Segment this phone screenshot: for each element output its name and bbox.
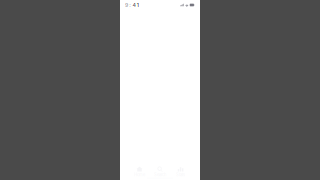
staticText: :	[129, 2, 131, 8]
staticText: 4	[132, 2, 135, 8]
staticText: 1	[137, 2, 139, 8]
staticText: 9	[125, 2, 128, 8]
